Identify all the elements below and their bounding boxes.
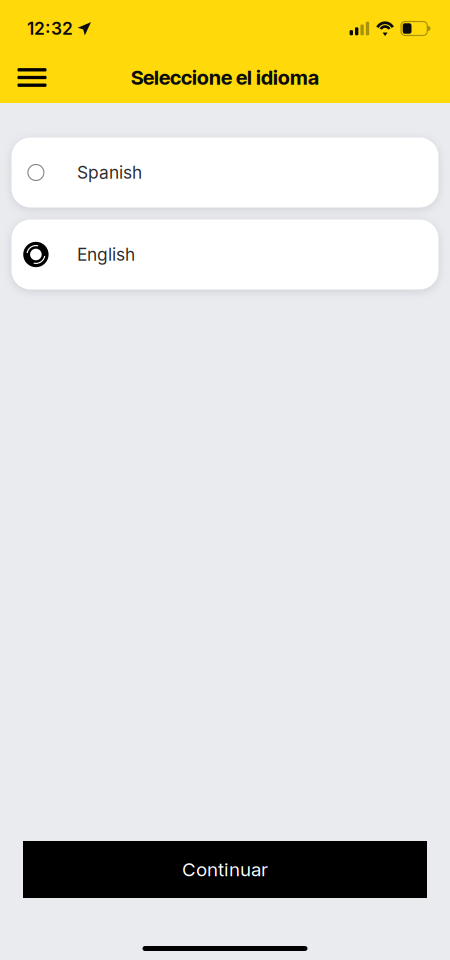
- staticText: English: [77, 244, 135, 265]
- staticText: 12:32: [27, 18, 73, 39]
- button[interactable]: Spanish: [11, 137, 438, 207]
- button[interactable]: Menu: [0, 53, 64, 101]
- button[interactable]: English: [11, 219, 438, 289]
- staticText: Continuar: [182, 858, 268, 881]
- staticText: Seleccione el idioma: [131, 65, 319, 90]
- button[interactable]: Continuar: [23, 841, 427, 898]
- staticText: Spanish: [77, 162, 142, 183]
